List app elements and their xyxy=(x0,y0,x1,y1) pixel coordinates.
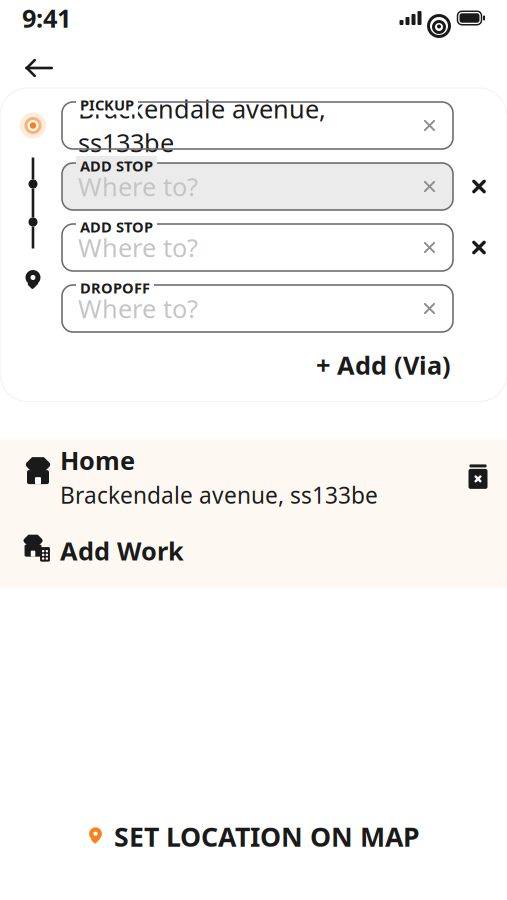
button[interactable]: Remove stop xyxy=(465,233,493,261)
button[interactable]: Where to? xyxy=(62,285,453,332)
staticText: Brackendale avenue, ss133be xyxy=(60,480,378,510)
staticText: + Add (Via) xyxy=(316,348,451,382)
button[interactable]: Where to? xyxy=(62,224,453,271)
staticText: ADD STOP xyxy=(80,217,153,236)
button[interactable]: Home xyxy=(0,440,507,514)
staticText: Brackendale avenue, ss133be xyxy=(78,92,326,159)
button[interactable]: Add Work xyxy=(0,514,507,588)
staticText: Where to? xyxy=(78,231,198,264)
staticText: PICKUP xyxy=(80,95,134,114)
button[interactable]: Where to? xyxy=(62,163,453,210)
button[interactable]: Brackendale avenue, ss133be xyxy=(62,102,453,149)
staticText: Home xyxy=(60,443,135,477)
staticText: SET LOCATION ON MAP xyxy=(114,819,420,854)
button[interactable]: Back xyxy=(12,48,66,88)
button[interactable]: + Add (Via) xyxy=(308,342,459,388)
button[interactable]: Remove stop xyxy=(465,172,493,200)
staticText: Add Work xyxy=(60,534,184,567)
staticText: DROPOFF xyxy=(80,278,150,297)
staticText: Where to? xyxy=(78,292,198,325)
staticText: Where to? xyxy=(78,170,198,203)
staticText: ADD STOP xyxy=(80,156,153,175)
button[interactable]: SET LOCATION ON MAP xyxy=(67,809,440,864)
staticText: 9:41 xyxy=(22,1,71,35)
